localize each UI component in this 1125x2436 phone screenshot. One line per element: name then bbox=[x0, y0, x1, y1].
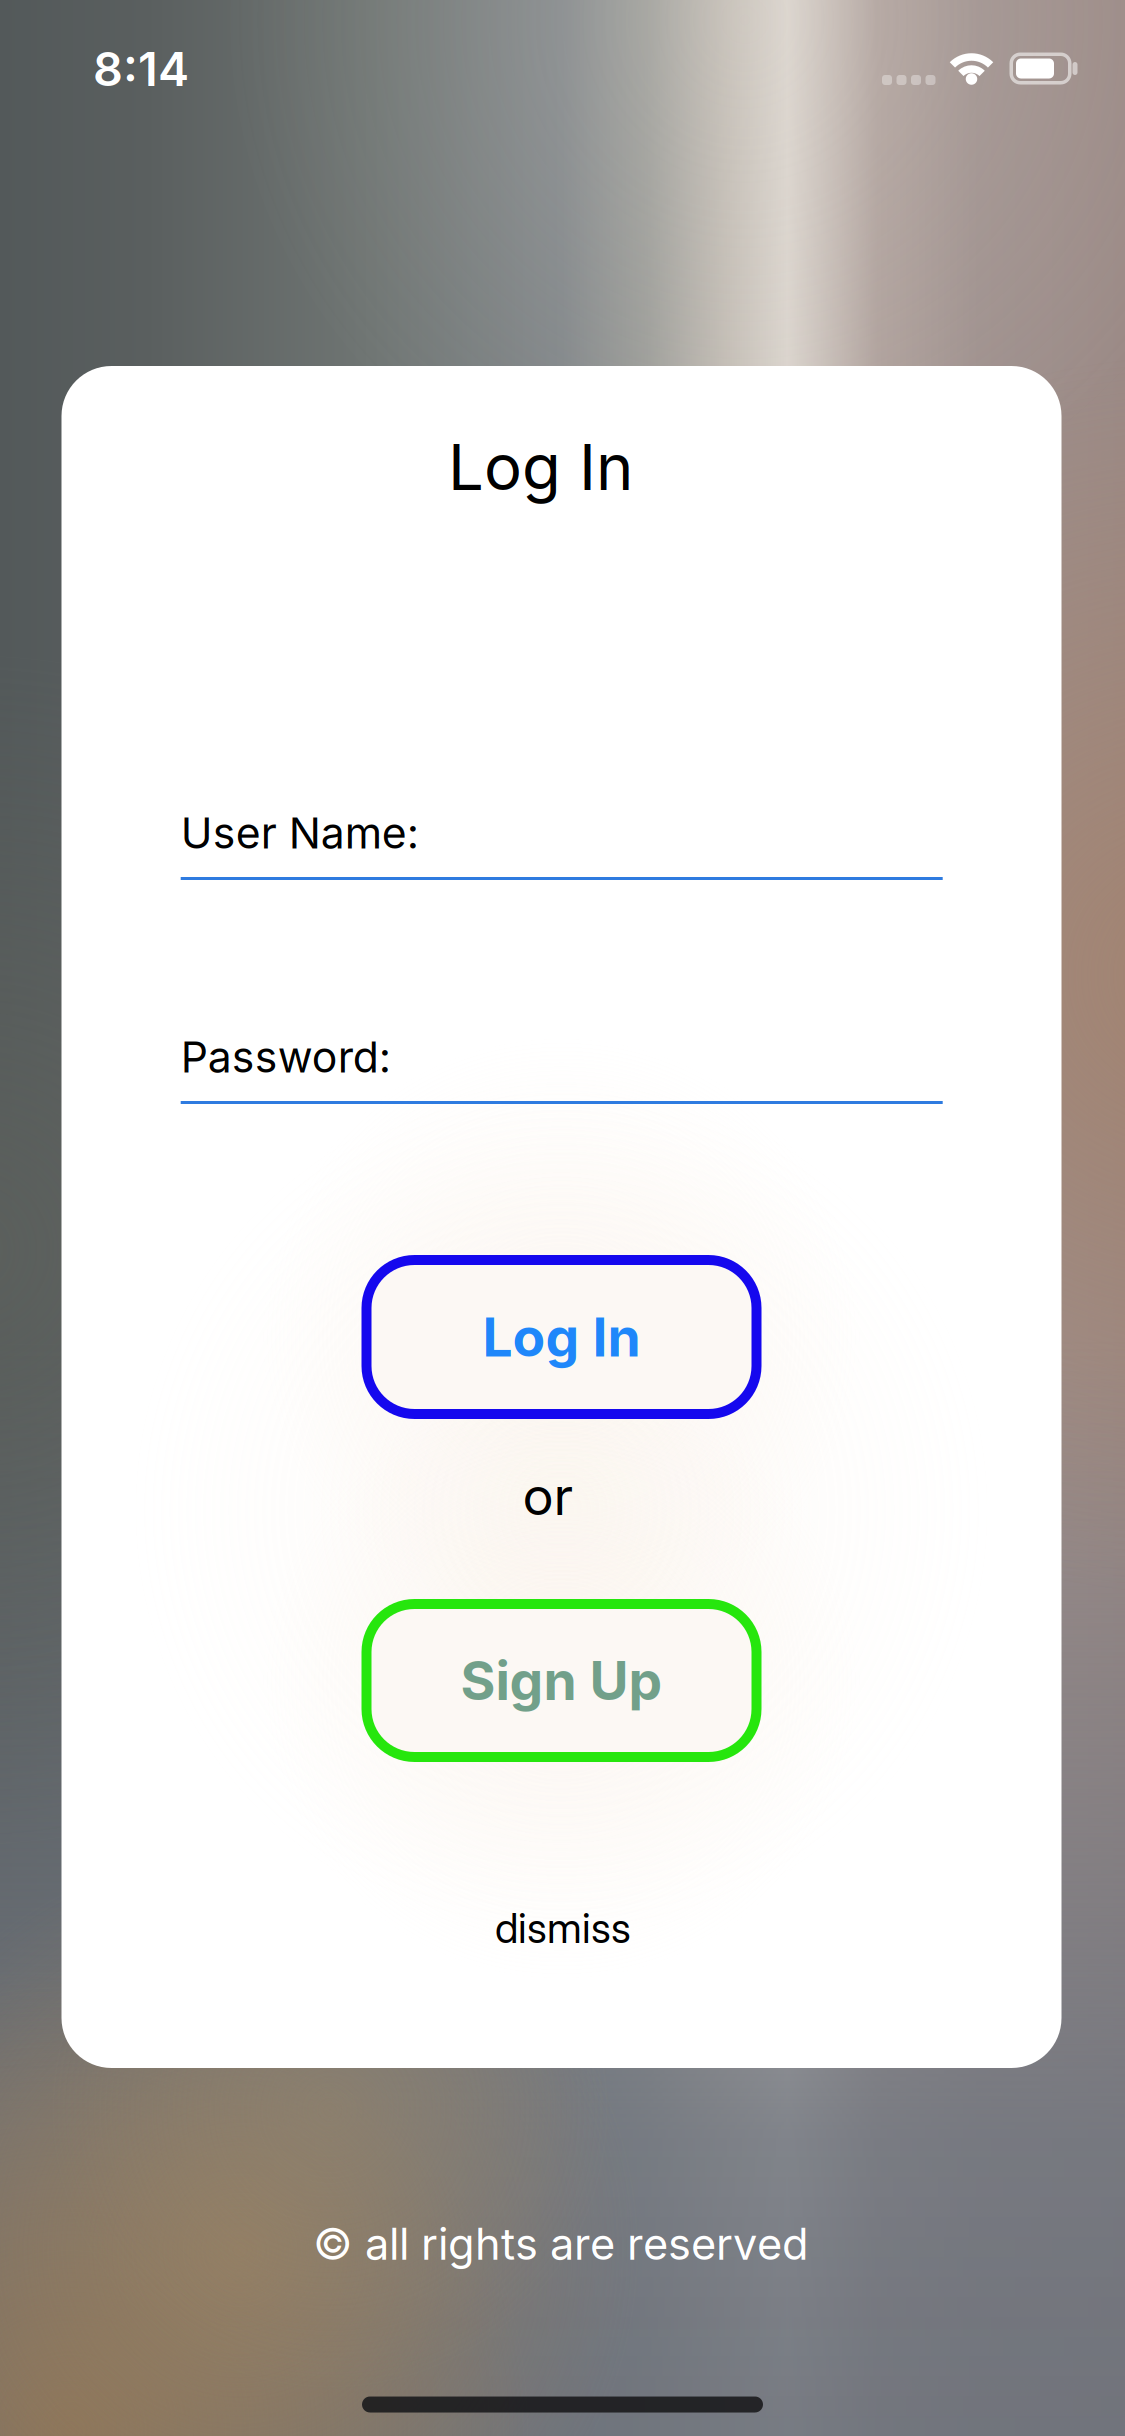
staticText: or bbox=[522, 1464, 573, 1527]
staticText: © all rights are reserved bbox=[313, 2218, 809, 2270]
staticText: 8:14 bbox=[93, 41, 189, 97]
button[interactable]: Sign Up bbox=[361, 1599, 761, 1762]
staticText: dismiss bbox=[495, 1903, 631, 1953]
button[interactable]: dismiss bbox=[495, 1903, 631, 1953]
staticText: Password: bbox=[181, 1031, 391, 1083]
staticText: Log In bbox=[482, 1305, 640, 1369]
staticText: Sign Up bbox=[460, 1648, 662, 1713]
staticText: User Name: bbox=[181, 807, 419, 859]
button[interactable]: Log In bbox=[361, 1255, 761, 1419]
staticText: Log In bbox=[448, 429, 633, 505]
